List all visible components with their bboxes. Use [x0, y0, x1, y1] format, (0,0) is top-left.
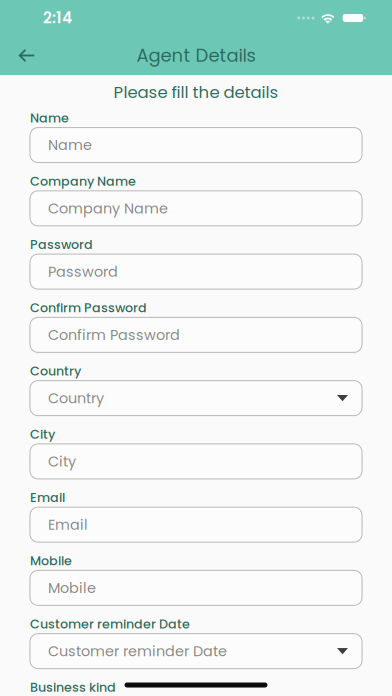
- button[interactable]: Name: [30, 128, 362, 163]
- staticText: City: [30, 425, 55, 443]
- button[interactable]: Email: [30, 507, 362, 542]
- staticText: Confirm Password: [48, 325, 180, 345]
- staticText: Name: [48, 135, 92, 155]
- staticText: Company Name: [48, 198, 168, 218]
- staticText: Agent Details: [136, 43, 255, 68]
- staticText: Please fill the details: [113, 81, 278, 104]
- button[interactable]: Customer reminder Date: [30, 634, 362, 669]
- staticText: Password: [30, 236, 93, 253]
- staticText: 2:14: [43, 7, 72, 29]
- staticText: Email: [48, 515, 88, 535]
- button[interactable]: Mobile: [30, 570, 362, 605]
- button[interactable]: Confirm Password: [30, 317, 362, 352]
- staticText: Country: [48, 388, 104, 408]
- staticText: Password: [48, 261, 118, 282]
- button[interactable]: Password: [30, 254, 362, 289]
- staticText: City: [48, 451, 76, 471]
- button[interactable]: Country: [30, 381, 362, 416]
- staticText: Mobile: [48, 578, 96, 598]
- button[interactable]: City: [30, 444, 362, 479]
- staticText: Confirm Password: [30, 299, 147, 317]
- staticText: Name: [30, 109, 69, 127]
- button[interactable]: Company Name: [30, 191, 362, 226]
- staticText: Customer reminder Date: [30, 615, 190, 633]
- staticText: Business kind: [30, 678, 116, 696]
- staticText: Country: [30, 362, 81, 380]
- button[interactable]: Back: [7, 34, 47, 76]
- staticText: Customer reminder Date: [48, 641, 227, 661]
- staticText: Email: [30, 489, 65, 506]
- staticText: Company Name: [30, 172, 136, 190]
- staticText: Mobile: [30, 552, 72, 570]
